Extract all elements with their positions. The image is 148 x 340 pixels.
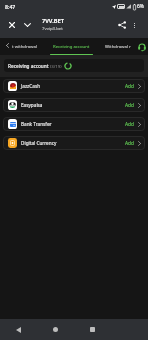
staticText: (3/19)	[50, 63, 62, 69]
button[interactable]: Bank Transfer	[3, 117, 145, 131]
staticText: Digital Currency	[21, 140, 57, 146]
staticText: Receiving account	[8, 63, 50, 69]
button[interactable]: Home	[37, 319, 74, 340]
staticText: Bank Transfer	[21, 121, 52, 127]
button[interactable]: Receiving account	[4, 59, 144, 72]
button[interactable]: Receiving account	[47, 37, 96, 54]
button[interactable]: Back	[2, 37, 13, 54]
button[interactable]: Back	[0, 319, 37, 340]
staticText: 8:47	[5, 3, 16, 10]
staticText: Add	[125, 121, 134, 127]
staticText: Withdrawal r	[105, 43, 131, 49]
staticText: Add	[125, 83, 134, 89]
button[interactable]: Customer support	[135, 38, 148, 55]
button[interactable]: JazzCash	[3, 79, 145, 93]
button[interactable]: Expand	[20, 12, 34, 38]
button[interactable]: Refresh	[64, 62, 72, 70]
staticText: t withdrawal	[12, 43, 37, 49]
button[interactable]: Easypaisa	[3, 98, 145, 112]
staticText: Add	[125, 140, 134, 146]
staticText: 6%	[137, 3, 145, 10]
button[interactable]: More options	[128, 12, 141, 38]
staticText: 7vvip3.bet	[42, 25, 63, 31]
button[interactable]: Withdrawal r	[102, 37, 134, 54]
button[interactable]: Recents	[74, 319, 111, 340]
staticText: JazzCash	[21, 83, 41, 89]
button[interactable]: Digital Currency	[3, 136, 145, 150]
staticText: Easypaisa	[21, 102, 43, 108]
button[interactable]: Close	[4, 12, 19, 38]
button[interactable]: t withdrawal	[10, 37, 39, 54]
staticText: Add	[125, 102, 134, 108]
staticText: 7VV.BET	[42, 17, 64, 25]
button[interactable]: Share	[114, 12, 129, 38]
staticText: Receiving account	[53, 43, 90, 49]
